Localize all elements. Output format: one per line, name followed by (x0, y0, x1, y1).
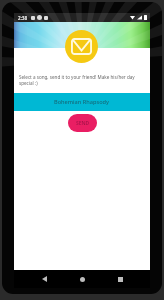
button[interactable]: Recent apps (112, 271, 128, 287)
button[interactable]: Home (74, 271, 90, 287)
button[interactable]: Bohemian Rhapsody (14, 93, 150, 111)
staticText: Select a song, send it to your friend! M… (19, 74, 139, 87)
staticText: 2:38 (18, 15, 28, 21)
staticText: SEND (76, 120, 90, 127)
button[interactable]: Back (36, 271, 52, 287)
staticText: Bohemian Rhapsody (54, 98, 110, 106)
button[interactable]: SEND (68, 114, 97, 132)
